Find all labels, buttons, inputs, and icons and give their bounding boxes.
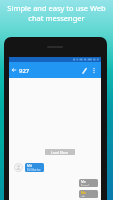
button[interactable]: More options [90, 66, 98, 74]
button[interactable]: Attach file [80, 66, 89, 75]
staticText: Load More [51, 150, 69, 155]
button[interactable]: Load More [45, 149, 75, 155]
staticText: Me [81, 191, 86, 195]
staticText: ok [81, 195, 85, 197]
staticText: Me [81, 180, 86, 184]
staticText: 927 [19, 67, 30, 75]
button[interactable]: Back [10, 66, 18, 74]
staticText: Sure! [81, 184, 89, 186]
staticText: I'd like to chat [27, 168, 42, 171]
staticText: Mit [27, 164, 32, 168]
staticText: Simple and easy to use Web [7, 3, 106, 13]
staticText: chat messenger [28, 13, 85, 23]
